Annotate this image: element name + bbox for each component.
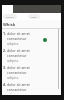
staticText: dolor sit amet — [7, 65, 30, 70]
staticText: consectetur — [7, 87, 27, 92]
other: Done — [43, 38, 47, 42]
staticText: adipisc — [7, 41, 19, 46]
staticText: dolor sit amet — [7, 31, 30, 36]
staticText: consectetur — [7, 36, 27, 41]
staticText: adipisc — [7, 75, 19, 80]
staticText: 1. — [3, 31, 6, 36]
staticText: 4. — [3, 82, 6, 87]
staticText: consectetur — [7, 70, 27, 75]
button[interactable]: walk — [28, 14, 40, 19]
staticText: dolor sit amet — [7, 48, 30, 53]
button[interactable]: 4. — [3, 81, 59, 95]
staticText: consectetur — [7, 53, 27, 58]
staticText: dolor sit amet — [7, 82, 30, 87]
staticText: 2. — [3, 48, 6, 53]
button[interactable]: 2. — [3, 47, 59, 64]
staticText: Whisk — [3, 22, 16, 27]
button[interactable]: 3. — [3, 64, 59, 81]
staticText: adipisc — [7, 58, 19, 63]
staticText: search — [6, 15, 14, 18]
button[interactable]: search — [3, 14, 17, 19]
button[interactable]: 1. — [3, 30, 59, 47]
staticText: 3. — [3, 65, 6, 70]
staticText: walk — [31, 15, 37, 18]
staticText: adipisc — [7, 92, 19, 94]
